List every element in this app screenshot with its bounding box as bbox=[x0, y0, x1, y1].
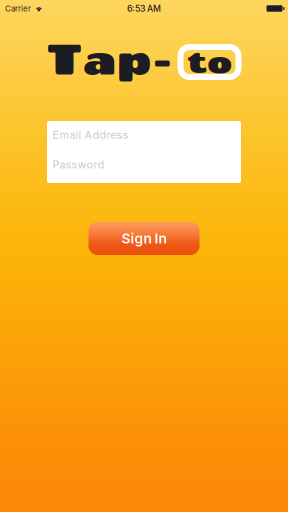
staticText: to bbox=[187, 42, 232, 79]
button[interactable]: Sign In bbox=[88, 222, 199, 255]
staticText: Tap- bbox=[46, 32, 173, 84]
staticText: Email Address bbox=[52, 128, 128, 141]
staticText: Password bbox=[52, 158, 104, 171]
staticText: Carrier bbox=[5, 4, 31, 13]
staticText: Sign In bbox=[121, 230, 166, 247]
button[interactable]: Password bbox=[47, 150, 241, 179]
staticText: 6:53 AM bbox=[127, 3, 161, 14]
button[interactable]: Email Address bbox=[47, 120, 241, 150]
